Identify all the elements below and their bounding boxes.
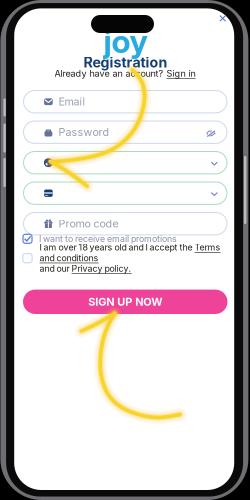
staticText: SIGN UP NOW bbox=[88, 295, 162, 308]
staticText: joy bbox=[103, 22, 147, 61]
button[interactable]: SIGN UP NOW bbox=[23, 290, 227, 314]
staticText: Promo code bbox=[58, 217, 118, 230]
staticText: Password bbox=[58, 126, 109, 139]
staticText: Registration bbox=[83, 54, 167, 71]
staticText: Email bbox=[58, 95, 85, 108]
staticText: I want to receive email promotions bbox=[39, 233, 177, 244]
staticText: Already have an account? Sign in bbox=[54, 68, 195, 79]
staticText: I am over 18 years old and I accept the … bbox=[40, 242, 221, 274]
